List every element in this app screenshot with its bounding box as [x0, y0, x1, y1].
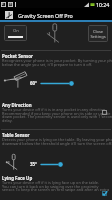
staticText: Lying Face Up: [2, 175, 33, 181]
staticText: 10:24: [96, 1, 110, 8]
staticText: delay.: [2, 118, 13, 123]
staticText: You can turn it back on by swiping over …: [2, 184, 99, 189]
staticText: Recognizes your phone is in your pocket.…: [2, 58, 112, 63]
button[interactable]: Any Direction: [100, 108, 108, 116]
staticText: Gravity Screen Off Pro: [18, 12, 73, 19]
staticText: Recommended if you keep your phone on it…: [2, 111, 111, 116]
staticText: sensor. To keep the screen on first swip…: [2, 187, 110, 192]
staticText: 60°: [30, 80, 37, 86]
staticText: Turns your device off if it is in any po…: [2, 107, 107, 112]
staticText: Table Sensor: [2, 132, 30, 138]
button[interactable]: On: [4, 25, 27, 41]
staticText: below the angle you set, it'll prepare t…: [2, 62, 93, 67]
staticText: Turns your device off if it is lying fac…: [2, 180, 100, 185]
staticText: down pocket. The proximity sensor is use…: [2, 114, 112, 119]
staticText: Pocket Sensor: [2, 53, 33, 59]
staticText: Detects your phone is lying on the table…: [2, 137, 112, 142]
staticText: 35°: [30, 161, 37, 167]
staticText: downward below the threshold angle it'll…: [2, 141, 112, 146]
button[interactable]: Pocket sensor angle: [38, 79, 78, 88]
staticText: Any Direction: [2, 102, 32, 108]
button[interactable]: Table sensor angle: [38, 160, 78, 169]
staticText: On: [13, 28, 19, 34]
button[interactable]: Close Settings: [88, 25, 108, 42]
staticText: Close Settings: [90, 29, 106, 39]
button[interactable]: Lying Face Up: [100, 189, 108, 197]
